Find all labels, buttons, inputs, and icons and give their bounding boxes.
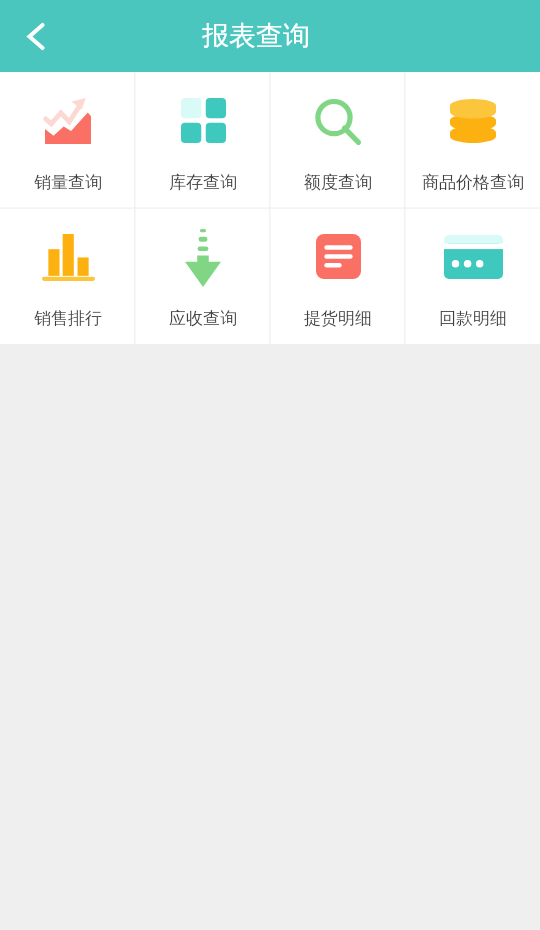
- button[interactable]: 库存查询: [135, 72, 270, 208]
- staticText: 销售排行: [34, 308, 102, 329]
- staticText: 额度查询: [304, 172, 372, 193]
- staticText: 应收查询: [169, 308, 237, 329]
- staticText: 销量查询: [34, 172, 102, 193]
- staticText: 库存查询: [169, 172, 237, 193]
- staticText: 商品价格查询: [422, 172, 524, 193]
- staticText: 回款明细: [439, 308, 507, 329]
- button[interactable]: Back: [13, 13, 59, 59]
- button[interactable]: 销量查询: [0, 72, 135, 208]
- staticText: 提货明细: [304, 308, 372, 329]
- button[interactable]: 提货明细: [270, 208, 405, 344]
- button[interactable]: 额度查询: [270, 72, 405, 208]
- button[interactable]: 商品价格查询: [405, 72, 540, 208]
- button[interactable]: 回款明细: [405, 208, 540, 344]
- button[interactable]: 应收查询: [135, 208, 270, 344]
- button[interactable]: 销售排行: [0, 208, 135, 344]
- staticText: 报表查询: [202, 19, 310, 53]
